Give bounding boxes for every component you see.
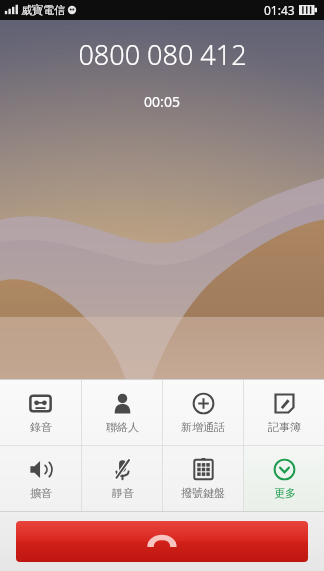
button[interactable]: 靜音 <box>82 446 162 511</box>
button[interactable]: 聯絡人 <box>82 380 162 445</box>
button[interactable]: 錄音 <box>0 380 81 445</box>
button[interactable]: 擴音 <box>0 446 81 511</box>
staticText: 威寶電信 <box>21 3 65 17</box>
button[interactable]: 新增通話 <box>163 380 243 445</box>
button[interactable]: 更多 <box>244 446 324 511</box>
staticText: 00:05 <box>144 92 180 111</box>
button[interactable]: 撥號鍵盤 <box>163 446 243 511</box>
staticText: 記事簿 <box>268 420 301 434</box>
button[interactable]: 記事簿 <box>244 380 324 445</box>
staticText: 靜音 <box>112 486 134 500</box>
staticText: 0800 080 412 <box>78 36 247 73</box>
staticText: 新增通話 <box>181 420 225 434</box>
staticText: 更多 <box>274 486 296 500</box>
staticText: 擴音 <box>30 486 52 500</box>
staticText: 撥號鍵盤 <box>181 486 225 500</box>
button[interactable]: End call <box>16 521 308 562</box>
staticText: 聯絡人 <box>106 420 139 434</box>
staticText: 01:43 <box>264 2 295 18</box>
staticText: 錄音 <box>30 420 52 434</box>
